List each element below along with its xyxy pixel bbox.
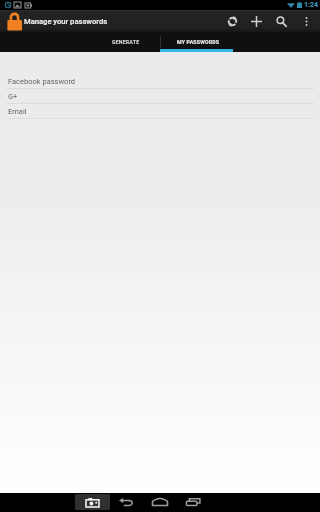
button[interactable]: Home [145,494,175,510]
staticText: Manage your passwords [24,17,108,26]
button[interactable]: MY PASSWORDS [162,32,234,52]
staticText: Facebook password [8,77,76,86]
staticText: MY PASSWORDS [177,39,220,45]
button[interactable]: Search [270,10,292,32]
button[interactable]: Back [111,494,141,510]
button[interactable]: Email [0,104,320,119]
button[interactable]: Refresh [221,10,243,32]
button[interactable]: More options [298,10,314,32]
button[interactable]: G+ [0,89,320,104]
button[interactable]: Facebook password [0,74,320,89]
staticText: GENERATE [112,39,140,45]
staticText: G+ [8,92,18,101]
staticText: Email [8,107,27,116]
button[interactable]: Screenshot [75,494,110,510]
button[interactable]: Add [245,10,267,32]
button[interactable]: Recent apps [179,494,208,510]
button[interactable]: GENERATE [90,32,162,52]
staticText: 1:24 [304,1,319,9]
